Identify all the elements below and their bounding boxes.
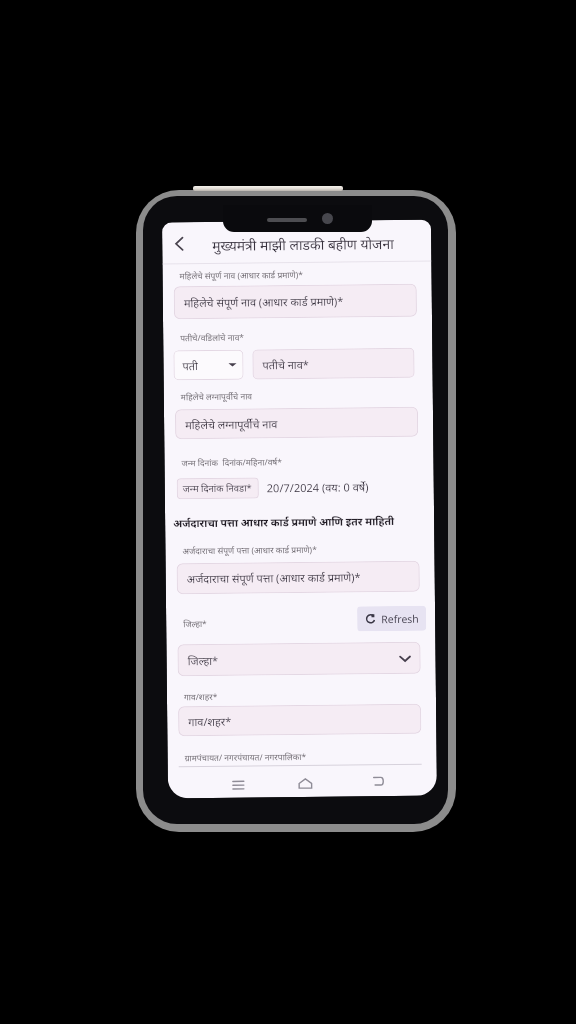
staticText: अर्जदाराचा पत्ता आधार कार्ड प्रमाणे आणि … (173, 514, 394, 530)
button[interactable]: महिलेचे लग्नापूर्वीचे नाव (175, 407, 418, 439)
staticText: जन्म दिनांक निवडा* (183, 481, 253, 495)
staticText: मुख्यमंत्री माझी लाडकी बहीण योजना (212, 234, 394, 255)
staticText: Refresh (381, 612, 419, 626)
button[interactable]: अर्जदाराचा संपूर्ण पत्ता (आधार कार्ड प्र… (177, 561, 420, 594)
staticText: गाव/शहर* (184, 691, 218, 703)
button[interactable]: जन्म दिनांक निवडा* (177, 477, 259, 499)
staticText: महिलेचे लग्नापूर्वीचे नाव (185, 416, 278, 432)
staticText: गाव/शहर* (188, 714, 232, 729)
staticText: जन्म दिनांक दिनांक/महिना/वर्ष* (181, 456, 283, 469)
staticText: पती (182, 358, 199, 373)
staticText: पतीचे नाव* (262, 357, 310, 372)
staticText: ग्रामपंचायत/ नगरपंचायत/ नगरपालिका* (184, 751, 307, 764)
button[interactable]: Back (166, 230, 192, 256)
staticText: महिलेचे संपूर्ण नाव (आधार कार्ड प्रमाणे)… (184, 293, 344, 310)
staticText: 20/7/2024 (वय: 0 वर्षे) (267, 479, 369, 495)
button[interactable]: जिल्हा* (177, 642, 421, 676)
staticText: जिल्हा* (187, 653, 219, 668)
button[interactable]: Back (367, 770, 389, 792)
button[interactable]: Home (294, 772, 316, 794)
staticText: अर्जदाराचा संपूर्ण पत्ता (आधार कार्ड प्र… (182, 544, 317, 557)
button[interactable]: Recent apps (227, 773, 249, 796)
button[interactable]: पती (173, 350, 244, 380)
button[interactable]: पतीचे नाव* (252, 348, 415, 379)
staticText: महिलेचे लग्नापूर्वीचे नाव (181, 390, 253, 403)
staticText: महिलेचे संपूर्ण नाव (आधार कार्ड प्रमाणे)… (179, 269, 304, 282)
staticText: अर्जदाराचा संपूर्ण पत्ता (आधार कार्ड प्र… (187, 569, 361, 586)
button[interactable]: महिलेचे संपूर्ण नाव (आधार कार्ड प्रमाणे)… (174, 284, 417, 319)
button[interactable]: Refresh (357, 606, 426, 631)
staticText: जिल्हा* (183, 618, 207, 630)
button[interactable]: गाव/शहर* (178, 704, 421, 736)
staticText: पतीचे/वडिलांचे नाव* (180, 332, 244, 344)
